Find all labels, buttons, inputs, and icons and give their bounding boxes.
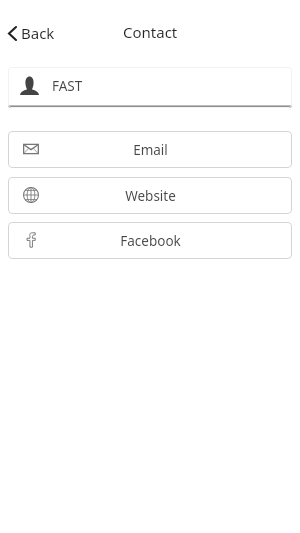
button[interactable]: Website	[8, 177, 292, 214]
button[interactable]: Facebook	[8, 222, 292, 259]
other: Facebook	[23, 232, 39, 248]
staticText: FAST	[52, 77, 83, 95]
other: Email	[23, 141, 39, 157]
staticText: Facebook	[120, 232, 181, 250]
button[interactable]: Contact avatar	[8, 67, 292, 108]
staticText: Contact	[123, 22, 178, 42]
staticText: Website	[125, 187, 176, 205]
button[interactable]: Back	[4, 19, 61, 47]
other: Contact avatar	[20, 76, 39, 95]
other: Website	[23, 187, 39, 203]
staticText: Back	[21, 23, 55, 43]
staticText: Email	[133, 141, 168, 159]
button[interactable]: Email	[8, 131, 292, 168]
other: Back	[8, 26, 17, 41]
